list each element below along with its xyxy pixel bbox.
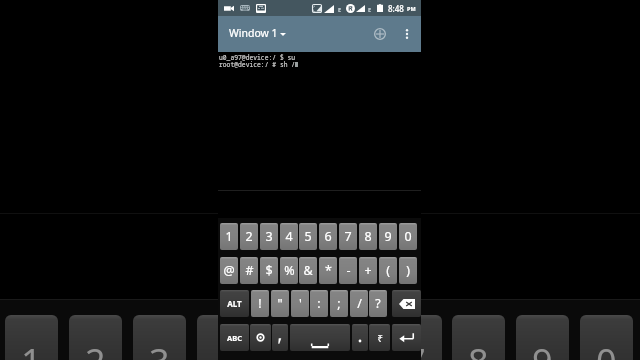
button[interactable]: * [319, 257, 337, 284]
button[interactable]: 5 [261, 315, 314, 360]
staticText: E [368, 6, 372, 13]
staticText: 9 [384, 228, 392, 245]
staticText: 6 [324, 228, 332, 245]
staticText: ' [299, 295, 302, 312]
button[interactable]: 2 [69, 315, 122, 360]
button[interactable]: " [271, 290, 289, 317]
staticText: # [245, 262, 254, 279]
button[interactable]: Window 1 [229, 15, 286, 51]
button[interactable]: 8 [452, 315, 505, 360]
staticText: u0_a97@device:/ $ su root@device:/ # sh … [219, 53, 296, 69]
button[interactable]: 7 [389, 315, 442, 360]
staticText: 5 [304, 228, 312, 245]
staticText: Window 1 [229, 26, 278, 40]
staticText: 6 [341, 337, 362, 360]
staticText: ? [375, 295, 381, 312]
staticText: 9 [532, 337, 553, 360]
button[interactable]: ! [251, 290, 269, 317]
button[interactable]: ALT [220, 290, 249, 317]
button[interactable]: More options [397, 22, 417, 46]
button[interactable]: & [299, 257, 317, 284]
staticText: 1 [225, 228, 233, 245]
staticText: 3 [149, 337, 170, 360]
button[interactable]: 4 [197, 315, 250, 360]
staticText: 2 [245, 228, 253, 245]
button[interactable] [290, 324, 350, 351]
button[interactable]: 1 [5, 315, 58, 360]
button[interactable]: 1 [220, 223, 238, 250]
staticText: - [346, 262, 351, 279]
button[interactable]: 3 [133, 315, 186, 360]
button[interactable]: 5 [299, 223, 317, 250]
button[interactable]: 2 [240, 223, 258, 250]
button[interactable]: ? [369, 290, 387, 317]
staticText: 1 [21, 337, 42, 360]
staticText: ( [386, 262, 390, 279]
button[interactable]: 7 [339, 223, 357, 250]
staticText: * [325, 262, 332, 279]
button[interactable]: 0 [399, 223, 417, 250]
staticText: / [357, 295, 362, 312]
staticText: $ [265, 262, 273, 279]
button[interactable] [392, 324, 421, 351]
staticText: 7 [344, 228, 352, 245]
button[interactable]: 6 [325, 315, 378, 360]
button[interactable]: 8 [359, 223, 377, 250]
button[interactable]: ₹ [369, 324, 390, 351]
button[interactable]: @ [220, 257, 238, 284]
staticText: ABC [227, 333, 242, 343]
button[interactable]: % [280, 257, 298, 284]
staticText: 8 [364, 228, 372, 245]
staticText: 3 [265, 228, 273, 245]
button[interactable]: : [310, 290, 328, 317]
staticText: 8:48 [388, 3, 404, 14]
staticText: 0 [404, 228, 412, 245]
staticText: 2 [85, 337, 106, 360]
staticText: 7 [405, 337, 426, 360]
staticText: + [364, 262, 372, 279]
staticText: E [338, 6, 342, 13]
staticText: 8 [468, 337, 489, 360]
staticText: ALT [227, 298, 242, 309]
staticText: 4 [213, 337, 234, 360]
staticText: 0 [596, 337, 617, 360]
staticText: " [277, 295, 283, 312]
staticText: % [284, 262, 295, 279]
button[interactable]: - [339, 257, 357, 284]
button[interactable]: 3 [260, 223, 278, 250]
button[interactable]: 9 [516, 315, 569, 360]
staticText: ₹ [377, 331, 383, 345]
button[interactable]: New window [369, 23, 391, 45]
staticText: : [317, 295, 321, 312]
button[interactable]: 6 [319, 223, 337, 250]
staticText: PM [407, 5, 416, 12]
button[interactable]: ; [330, 290, 348, 317]
staticText: @ [223, 262, 235, 279]
button[interactable]: ( [379, 257, 397, 284]
button[interactable]: ) [399, 257, 417, 284]
staticText: 5 [277, 337, 298, 360]
staticText: ! [258, 295, 262, 312]
button[interactable]: + [359, 257, 377, 284]
button[interactable]: # [240, 257, 258, 284]
button[interactable] [352, 324, 368, 351]
button[interactable]: ABC [220, 324, 249, 351]
button[interactable] [250, 324, 271, 351]
button[interactable]: $ [260, 257, 278, 284]
button[interactable] [392, 290, 421, 317]
staticText: ) [406, 262, 410, 279]
button[interactable]: 9 [379, 223, 397, 250]
button[interactable]: / [350, 290, 368, 317]
button[interactable] [272, 324, 288, 351]
button[interactable]: ' [291, 290, 309, 317]
staticText: & [303, 262, 313, 279]
button[interactable]: 0 [580, 315, 633, 360]
staticText: 4 [285, 228, 293, 245]
button[interactable]: 4 [280, 223, 298, 250]
staticText: ; [337, 295, 341, 312]
